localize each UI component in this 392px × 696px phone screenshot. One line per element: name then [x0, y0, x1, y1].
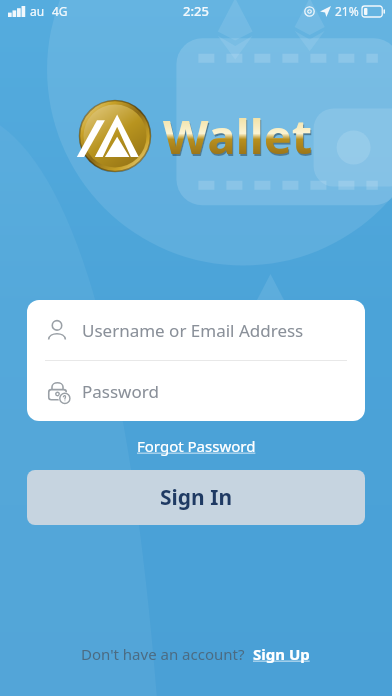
- staticText: Sign Up: [253, 644, 310, 664]
- button[interactable]: Sign In: [27, 470, 365, 525]
- button[interactable]: Username or Email Address: [27, 300, 365, 360]
- button[interactable]: Password: [27, 361, 365, 421]
- staticText: Wallet: [163, 104, 313, 168]
- staticText: 21%: [335, 3, 359, 19]
- staticText: Username or Email Address: [82, 319, 304, 342]
- staticText: Don't have an account?: [81, 644, 245, 664]
- staticText: Wallet: [164, 106, 314, 170]
- button[interactable]: Sign Up: [251, 642, 312, 666]
- staticText: Forgot Password: [137, 436, 256, 456]
- staticText: Password: [82, 380, 159, 403]
- button[interactable]: Forgot Password: [131, 434, 262, 458]
- staticText: Sign In: [160, 483, 233, 512]
- staticText: 2:25: [183, 2, 209, 20]
- staticText: au: [30, 3, 45, 19]
- staticText: 4G: [52, 3, 68, 19]
